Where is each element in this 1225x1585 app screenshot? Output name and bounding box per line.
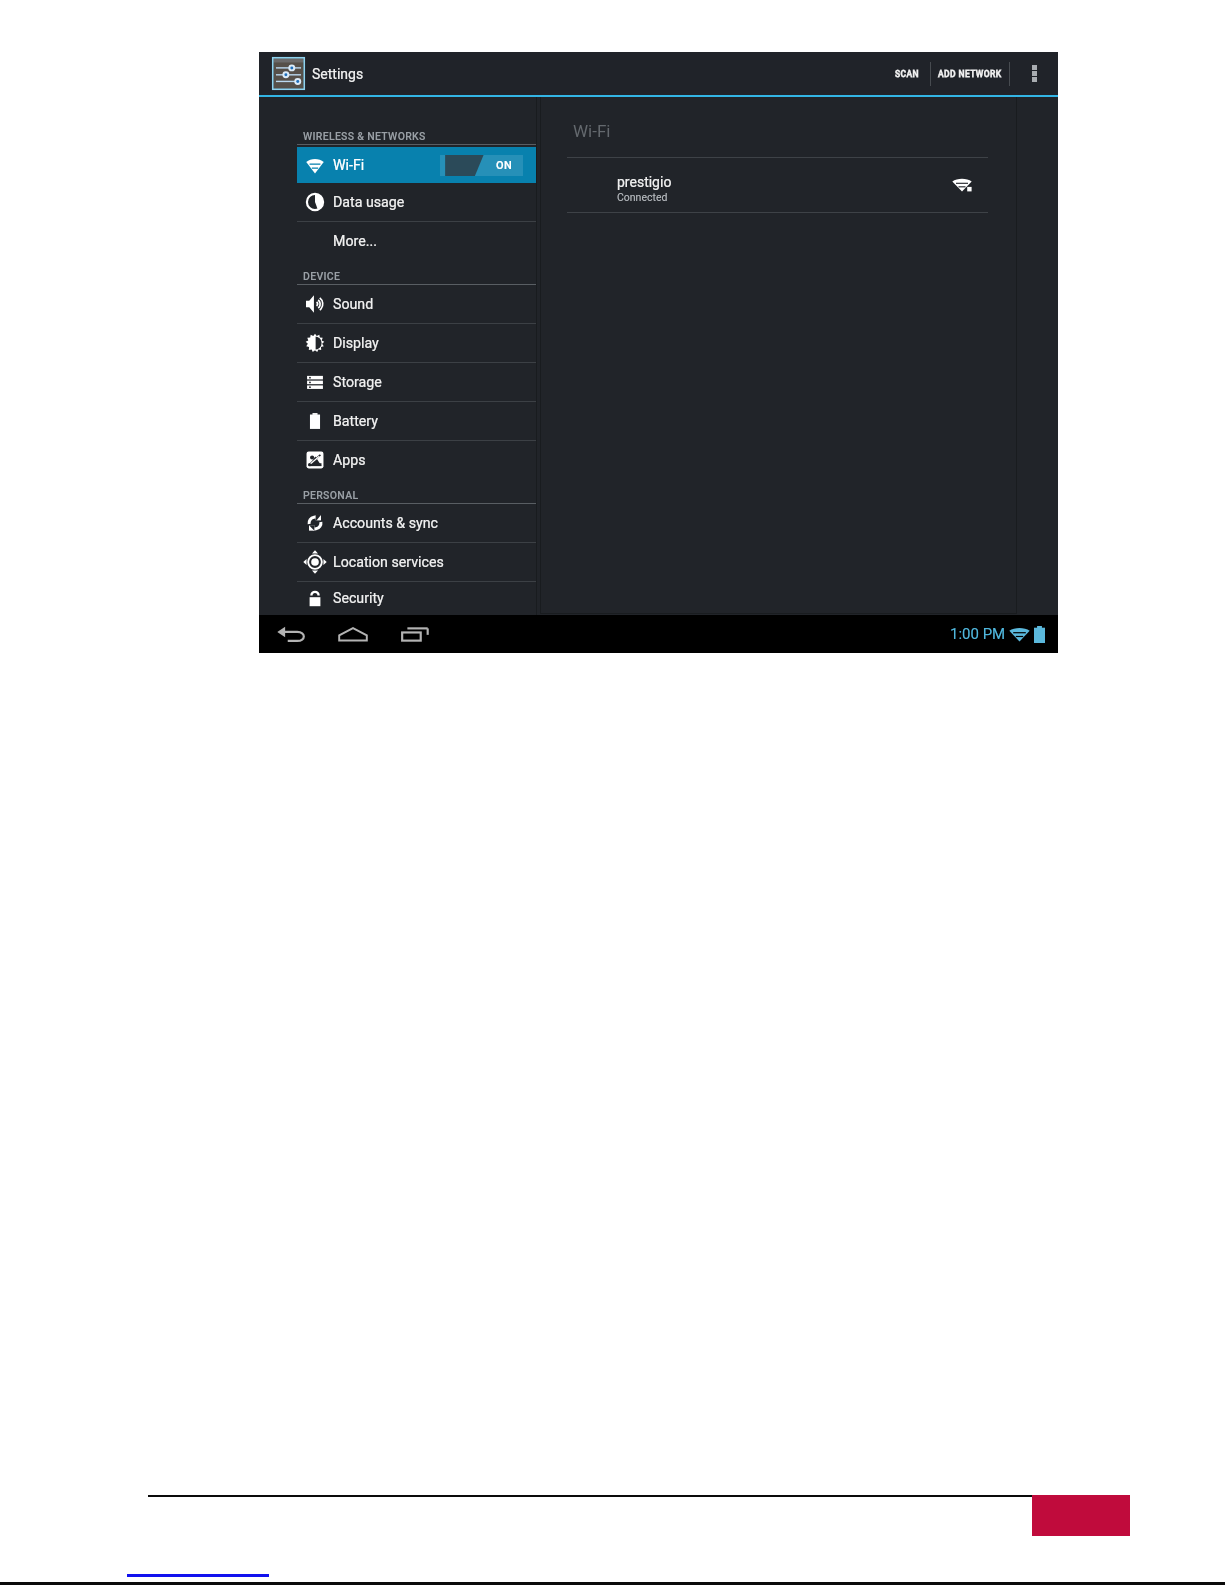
- staticText: Accounts & sync: [333, 515, 438, 532]
- staticText: Wi-Fi: [573, 121, 611, 141]
- staticText: Apps: [333, 452, 366, 469]
- button[interactable]: Location services: [259, 543, 536, 581]
- button[interactable]: Recent apps: [384, 615, 446, 653]
- button[interactable]: More options: [1010, 52, 1058, 95]
- button[interactable]: prestigio: [540, 158, 1017, 212]
- button[interactable]: Data usage: [259, 183, 536, 221]
- staticText: Display: [333, 335, 379, 352]
- staticText: Battery: [333, 413, 379, 430]
- staticText: DEVICE: [303, 270, 341, 282]
- staticText: PERSONAL: [303, 489, 359, 501]
- staticText: Settings: [312, 66, 364, 82]
- button[interactable]: Wi-Fi: [297, 147, 536, 183]
- button[interactable]: Wi-Fi on: [440, 155, 523, 176]
- staticText: ON: [496, 159, 513, 172]
- staticText: 1:00 PM: [950, 625, 1006, 643]
- button[interactable]: Sound: [259, 285, 536, 323]
- button[interactable]: Display: [259, 324, 536, 362]
- staticText: WIRELESS & NETWORKS: [303, 130, 426, 142]
- button[interactable]: Accounts & sync: [259, 504, 536, 542]
- button[interactable]: Home: [322, 615, 384, 653]
- staticText: SCAN: [895, 69, 919, 79]
- button[interactable]: Settings: [259, 52, 374, 95]
- button[interactable]: Apps: [259, 441, 536, 479]
- button[interactable]: Battery: [259, 402, 536, 440]
- staticText: More...: [333, 233, 377, 250]
- button[interactable]: SCAN: [883, 52, 930, 95]
- staticText: prestigio: [617, 174, 672, 190]
- staticText: ADD NETWORK: [938, 69, 1002, 79]
- staticText: Wi-Fi: [333, 157, 365, 174]
- button[interactable]: ADD NETWORK: [931, 52, 1009, 95]
- staticText: Sound: [333, 296, 374, 313]
- button[interactable]: Security: [259, 582, 536, 615]
- staticText: Connected: [617, 191, 668, 203]
- button[interactable]: Storage: [259, 363, 536, 401]
- button[interactable]: Back: [260, 615, 322, 653]
- staticText: Location services: [333, 554, 444, 571]
- staticText: Data usage: [333, 194, 405, 211]
- staticText: Storage: [333, 374, 382, 391]
- button[interactable]: More...: [259, 222, 536, 260]
- staticText: Security: [333, 590, 384, 607]
